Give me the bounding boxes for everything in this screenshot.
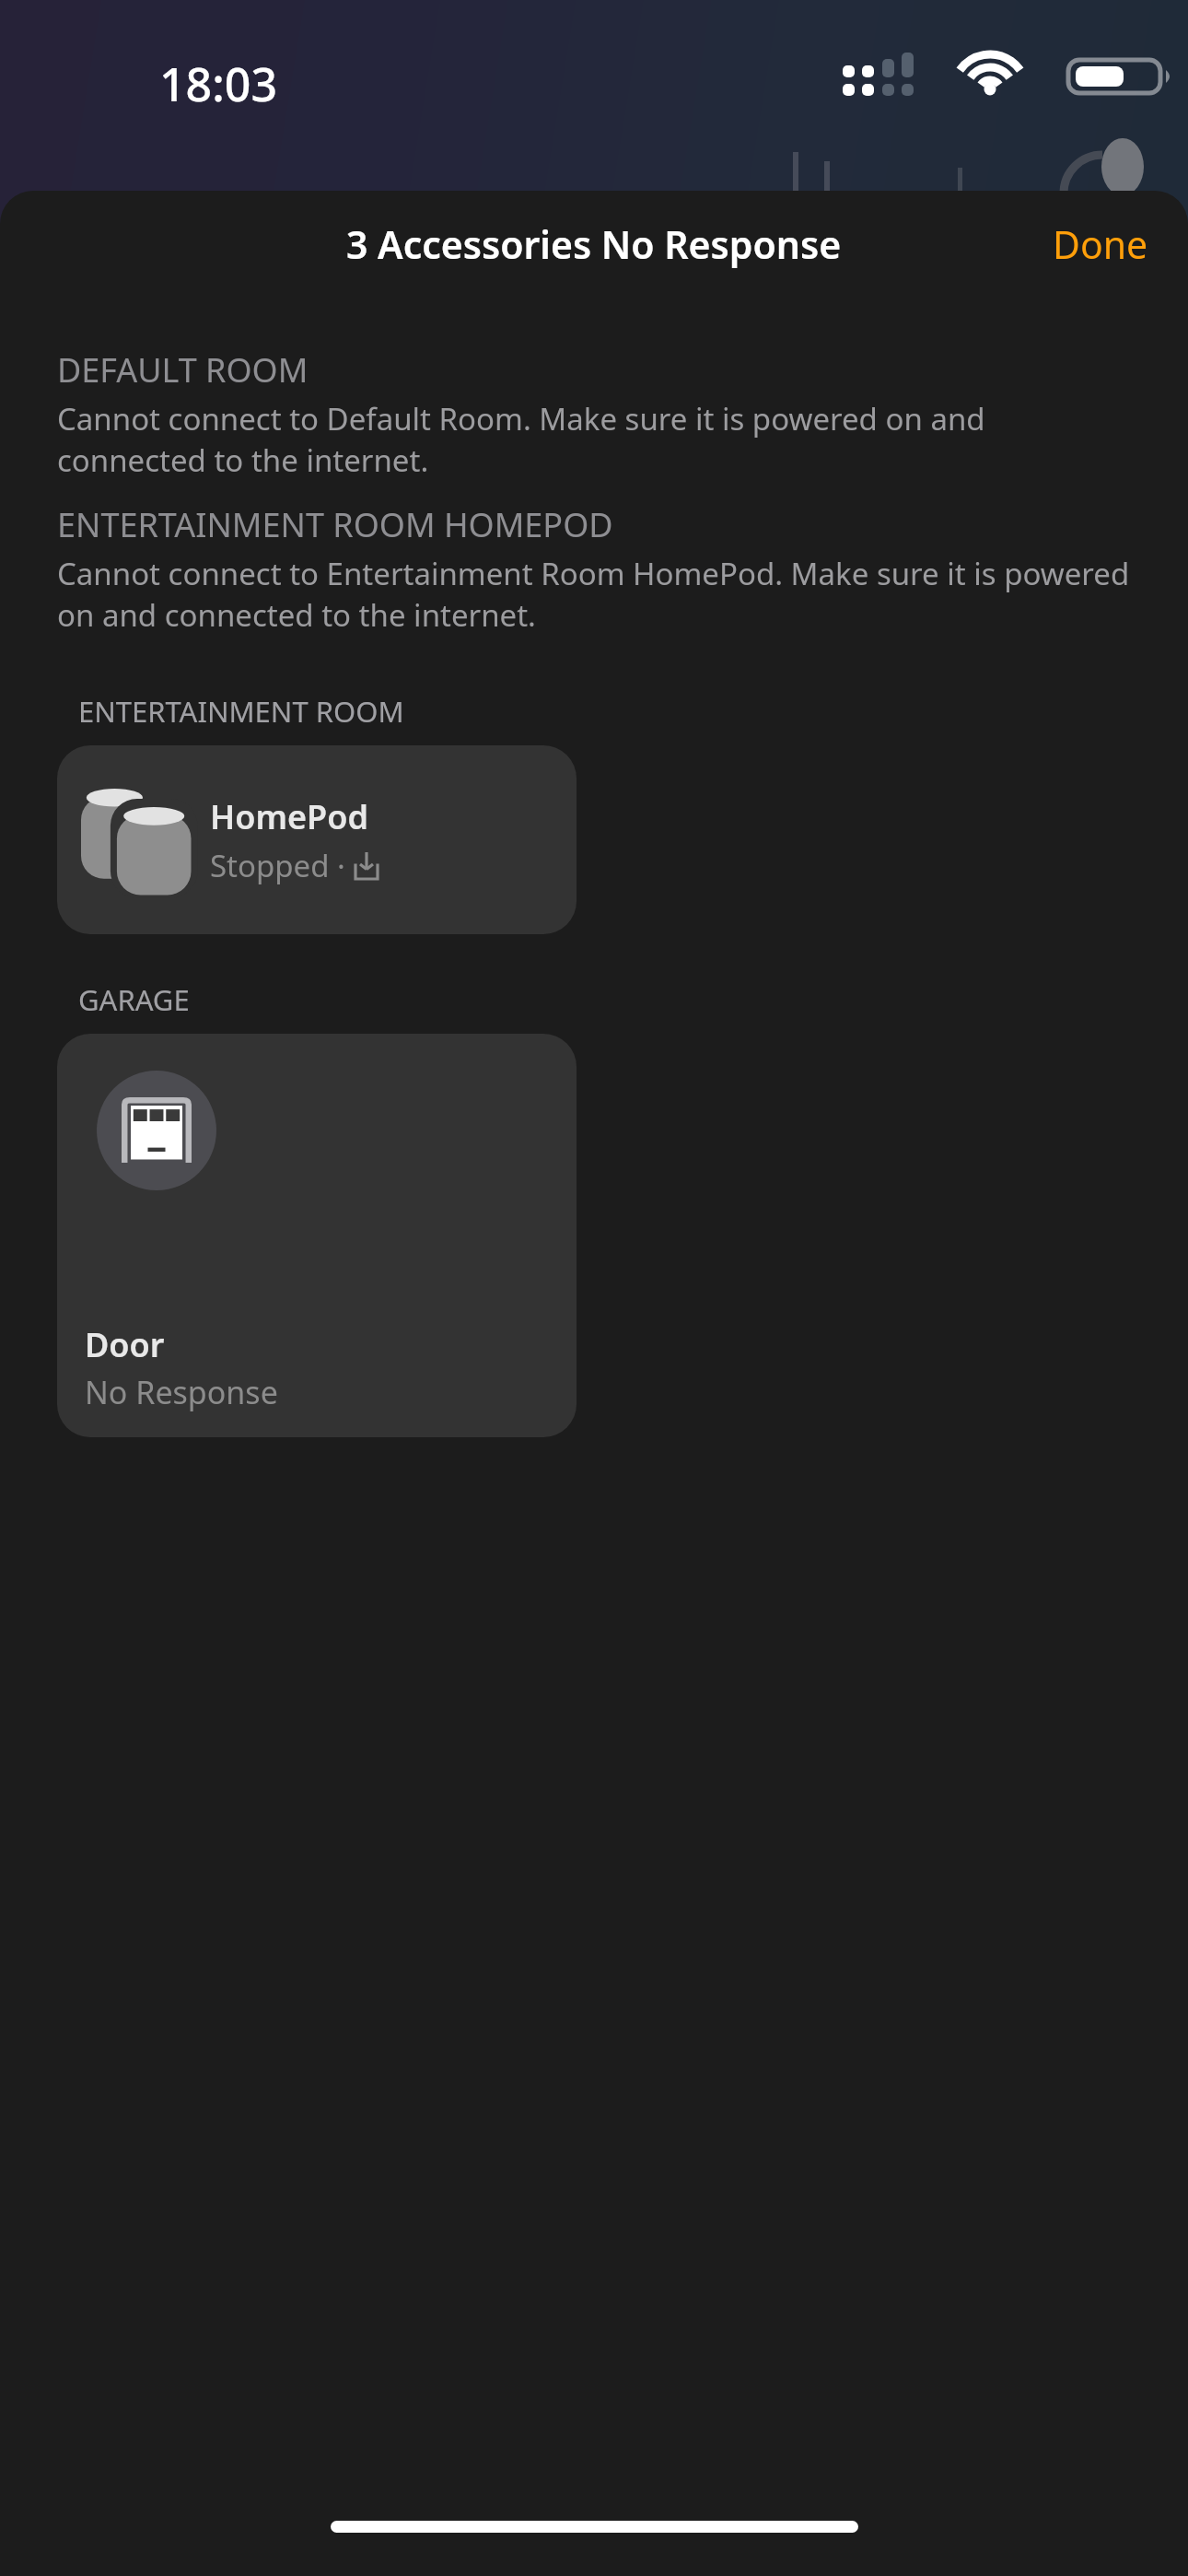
- staticText: DEFAULT ROOM: [57, 347, 309, 392]
- staticText: Door: [85, 1322, 165, 1367]
- staticText: No Response: [85, 1371, 278, 1413]
- button[interactable]: Done: [1013, 202, 1188, 287]
- staticText: 3 Accessories No Response: [346, 218, 842, 270]
- staticText: Stopped ·: [210, 845, 345, 886]
- staticText: Cannot connect to Default Room. Make sur…: [57, 398, 1131, 480]
- staticText: ENTERTAINMENT ROOM: [78, 692, 404, 731]
- button[interactable]: Garage Door: [57, 1034, 577, 1437]
- staticText: Cannot connect to Entertainment Room Hom…: [57, 553, 1131, 635]
- staticText: HomePod: [210, 794, 368, 839]
- staticText: Done: [1053, 218, 1148, 270]
- staticText: ENTERTAINMENT ROOM HOMEPOD: [57, 502, 613, 547]
- button[interactable]: HomePod: [57, 745, 577, 934]
- staticText: 18:03: [159, 53, 277, 115]
- other: Garage Door: [97, 1071, 216, 1190]
- staticText: GARAGE: [78, 980, 190, 1019]
